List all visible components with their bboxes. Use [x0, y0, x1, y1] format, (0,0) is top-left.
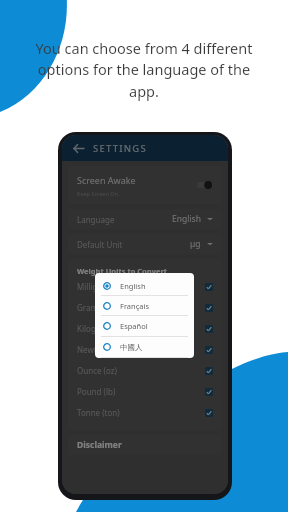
button[interactable]: Milligram (mg) — [77, 276, 213, 297]
button[interactable]: Disclaimer — [68, 435, 222, 455]
staticText: 中國人 — [120, 343, 143, 352]
staticText: Screen Awake — [77, 174, 136, 186]
staticText: µg — [190, 238, 201, 250]
button[interactable]: Back — [70, 140, 86, 156]
staticText: Français — [120, 301, 150, 311]
staticText: Milligram (mg) — [77, 281, 132, 292]
button[interactable]: Pound (lb) — [77, 381, 213, 402]
staticText: Keep Screen On. — [77, 190, 120, 197]
staticText: Gram (g) — [77, 302, 110, 313]
staticText: You can choose from 4 different options … — [22, 38, 266, 102]
staticText: Weight Units to Convert — [77, 266, 168, 276]
staticText: Default Unit — [77, 239, 123, 250]
button[interactable]: Newtons (n) — [77, 339, 213, 360]
button[interactable]: English — [95, 276, 194, 295]
staticText: SETTINGS — [93, 142, 147, 155]
staticText: Ounce (oz) — [77, 365, 117, 376]
button[interactable]: Screen awake toggle — [197, 180, 213, 190]
button[interactable]: Ounce (oz) — [77, 360, 213, 381]
button[interactable]: Kilogram (kg) — [77, 318, 213, 339]
button[interactable]: Screen Awake — [68, 166, 222, 204]
staticText: Disclaimer — [77, 439, 122, 451]
button[interactable]: Default Unit — [68, 234, 222, 254]
button[interactable]: Español — [95, 316, 194, 336]
button[interactable]: 中國人 — [95, 337, 194, 357]
button[interactable]: Language — [68, 209, 222, 229]
button[interactable]: Tonne (ton) — [77, 402, 213, 423]
staticText: English — [120, 281, 146, 291]
staticText: Español — [120, 321, 148, 331]
staticText: Tonne (ton) — [77, 407, 120, 418]
staticText: Pound (lb) — [77, 386, 116, 397]
staticText: Kilogram (kg) — [77, 323, 128, 334]
staticText: Newtons (n) — [77, 344, 123, 355]
button[interactable]: Français — [95, 296, 194, 315]
button[interactable]: Gram (g) — [77, 297, 213, 318]
staticText: English — [172, 213, 201, 225]
staticText: Language — [77, 214, 115, 225]
